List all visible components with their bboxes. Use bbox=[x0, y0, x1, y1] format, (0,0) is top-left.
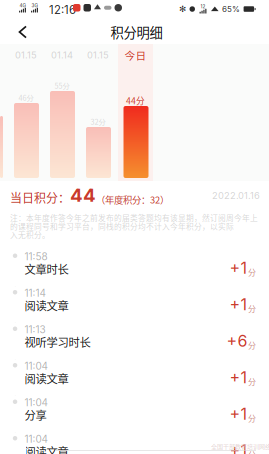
staticText: 分 bbox=[248, 303, 256, 314]
staticText: 44分 bbox=[126, 94, 145, 107]
staticText: +1 bbox=[229, 295, 247, 314]
staticText: 55分 bbox=[54, 80, 69, 91]
staticText: 4G bbox=[19, 3, 25, 8]
staticText: 阅读文章 bbox=[24, 443, 68, 454]
staticText: 11:58 bbox=[24, 250, 47, 263]
staticText: 分 bbox=[248, 266, 256, 278]
staticText: 阅读文章 bbox=[24, 297, 68, 313]
staticText: 11:13 bbox=[24, 323, 45, 336]
staticText: 分 bbox=[248, 412, 256, 424]
staticText: 分享 bbox=[24, 406, 46, 423]
button[interactable]: 11:04 bbox=[0, 432, 269, 454]
staticText: 分 bbox=[248, 339, 256, 351]
staticText: +6 bbox=[226, 331, 247, 351]
staticText: 当日积分： bbox=[10, 189, 70, 206]
button[interactable]: Back bbox=[7, 19, 39, 45]
staticText: +1 bbox=[229, 368, 247, 387]
staticText: 32分 bbox=[90, 116, 105, 127]
staticText: 11:04 bbox=[24, 360, 47, 372]
staticText: 01.15 bbox=[87, 49, 109, 61]
staticText: 视听学习时长 bbox=[24, 333, 90, 350]
staticText: 44 bbox=[70, 184, 96, 206]
staticText: 的课程同号和学习平台，同栈的积分均不计入今年积分，以实际 bbox=[10, 220, 234, 232]
staticText: +1 bbox=[229, 441, 247, 454]
staticText: 01.14 bbox=[51, 49, 73, 61]
staticText: （年度积分：32） bbox=[96, 193, 169, 206]
staticText: 11:04 bbox=[24, 396, 47, 409]
staticText: 今日 bbox=[124, 47, 146, 63]
staticText: +1 bbox=[229, 404, 247, 424]
staticText: 注：本年度作答今年之前发布的届类答题均有该显期，然订阅周今年上 bbox=[10, 212, 258, 223]
staticText: 文章时长 bbox=[24, 260, 68, 277]
staticText: 入无积分。 bbox=[10, 229, 50, 240]
staticText: 积分明细 bbox=[110, 22, 162, 42]
button[interactable]: 11:04 bbox=[0, 396, 269, 432]
staticText: 11:04 bbox=[24, 433, 47, 445]
staticText: 12:16 bbox=[49, 3, 76, 17]
staticText: 3G bbox=[31, 3, 37, 8]
button[interactable]: 11:58 bbox=[0, 250, 269, 286]
button[interactable]: 11:13 bbox=[0, 323, 269, 359]
staticText: 65% bbox=[222, 4, 240, 14]
staticText: 分 bbox=[248, 449, 256, 454]
staticText: 全国干部教育培训网络学院 bbox=[211, 442, 269, 451]
staticText: ✻ bbox=[179, 4, 186, 14]
staticText: 阅读文章 bbox=[24, 370, 68, 386]
staticText: 01.15 bbox=[15, 49, 37, 61]
button[interactable]: 11:14 bbox=[0, 286, 269, 322]
staticText: 分 bbox=[248, 376, 256, 387]
staticText: 11:14 bbox=[24, 287, 45, 299]
button[interactable]: 11:04 bbox=[0, 359, 269, 395]
staticText: 12 bbox=[200, 4, 205, 9]
staticText: +1 bbox=[229, 258, 247, 278]
staticText: 46分 bbox=[18, 92, 33, 103]
staticText: 2022.01.16 bbox=[212, 190, 260, 201]
